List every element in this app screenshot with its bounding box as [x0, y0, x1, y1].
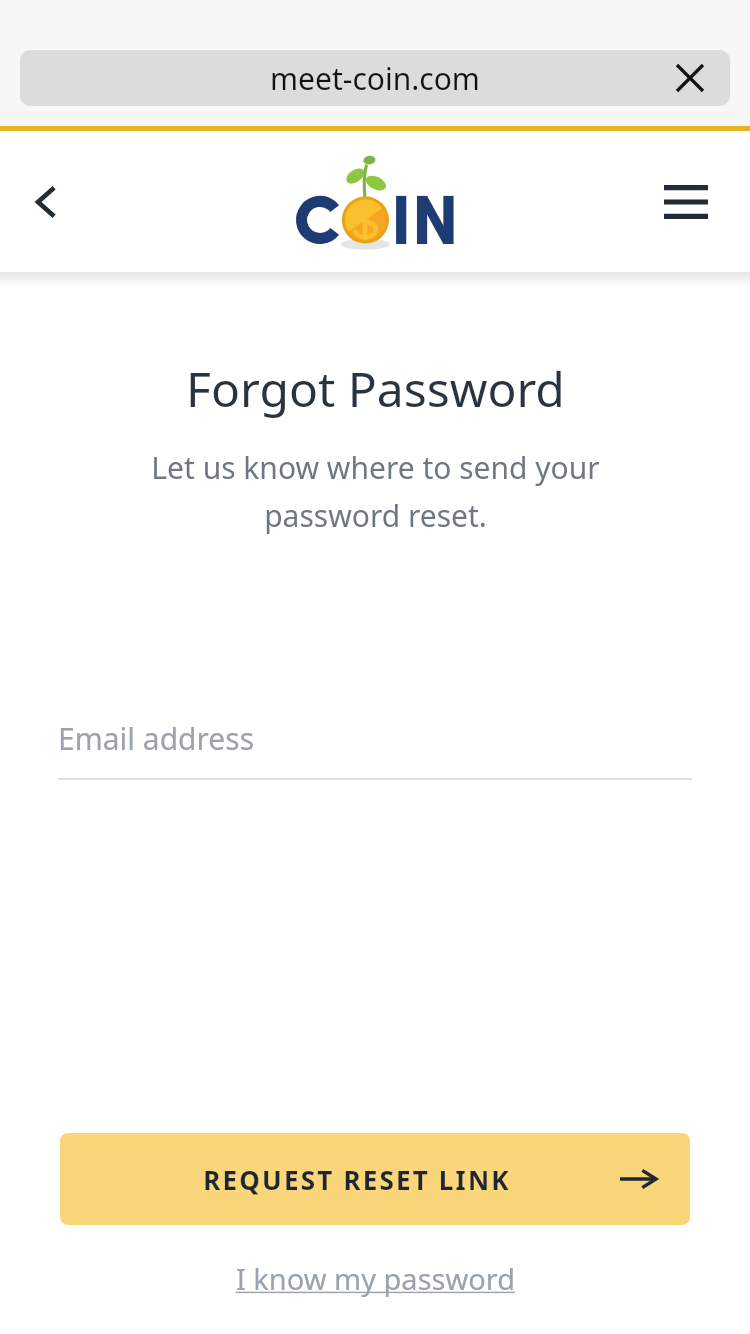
button[interactable]: Menu	[654, 170, 718, 234]
button[interactable]: COIN home	[275, 149, 475, 259]
button[interactable]: Email address	[58, 718, 692, 780]
staticText: Email address	[58, 718, 255, 759]
staticText: meet-coin.com	[270, 58, 480, 99]
button[interactable]: Close	[662, 50, 718, 106]
button[interactable]: I know my password	[224, 1253, 527, 1304]
staticText: REQUEST RESET LINK	[203, 1162, 511, 1197]
staticText: I know my password	[236, 1259, 515, 1298]
button[interactable]: REQUEST RESET LINK	[60, 1133, 690, 1225]
staticText: Let us know where to send your password …	[151, 447, 600, 535]
button[interactable]: Back	[14, 170, 78, 234]
staticText: Forgot Password	[186, 356, 565, 421]
button[interactable]: meet-coin.com	[20, 50, 730, 106]
